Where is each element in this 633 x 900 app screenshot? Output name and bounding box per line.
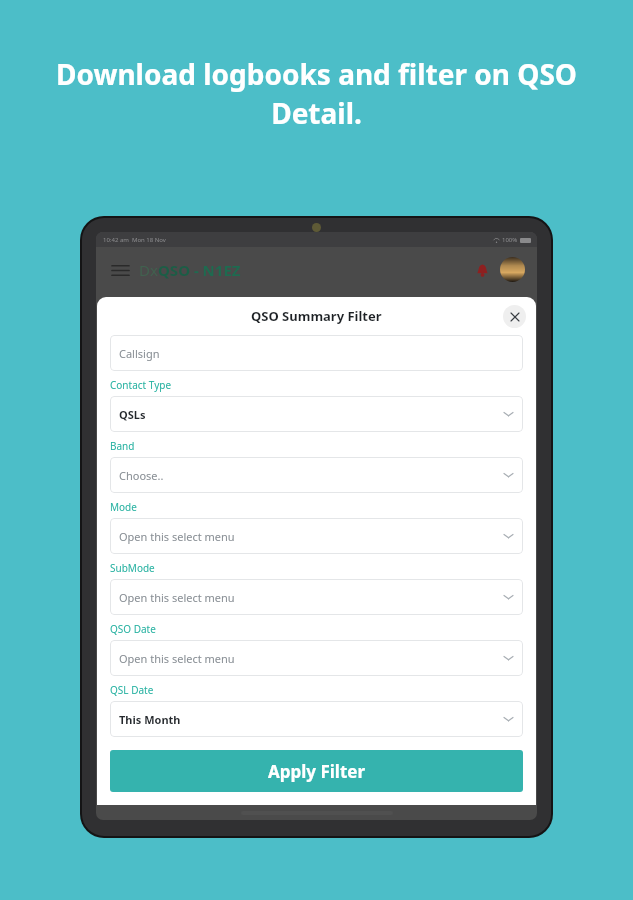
staticText: This Month xyxy=(119,712,181,727)
staticText: Open this select menu xyxy=(119,590,235,605)
button[interactable]: QSLs xyxy=(110,396,523,432)
button[interactable]: Callsign xyxy=(110,335,523,371)
staticText: Choose.. xyxy=(119,468,164,483)
button[interactable]: Profile xyxy=(500,257,525,282)
button[interactable]: Notifications xyxy=(471,259,493,281)
staticText: Band xyxy=(110,439,135,453)
staticText: QSL Date xyxy=(110,683,154,697)
staticText: 10:42 am Mon 18 Nov xyxy=(103,236,166,244)
staticText: Contact Type xyxy=(110,378,172,392)
staticText: Open this select menu xyxy=(119,651,235,666)
button[interactable]: Open this select menu xyxy=(110,640,523,676)
button[interactable]: Open this select menu xyxy=(110,579,523,615)
staticText: QSO xyxy=(158,260,190,280)
button[interactable]: Close xyxy=(503,305,526,328)
button[interactable]: Apply Filter xyxy=(110,750,523,792)
staticText: QSO Summary Filter xyxy=(251,307,382,325)
staticText: Download logbooks and filter on QSO Deta… xyxy=(42,55,591,132)
button[interactable]: Choose.. xyxy=(110,457,523,493)
button[interactable]: This Month xyxy=(110,701,523,737)
staticText: QSO Date xyxy=(110,622,156,636)
staticText: - N1EZ xyxy=(190,260,241,280)
staticText: Open this select menu xyxy=(119,529,235,544)
staticText: Apply Filter xyxy=(268,760,366,783)
button[interactable]: Open this select menu xyxy=(110,518,523,554)
staticText: Dx xyxy=(139,260,158,280)
staticText: 100% xyxy=(502,236,518,244)
button[interactable]: Menu xyxy=(108,258,132,282)
staticText: Callsign xyxy=(119,346,160,361)
staticText: Mode xyxy=(110,500,137,514)
staticText: QSLs xyxy=(119,407,146,422)
staticText: SubMode xyxy=(110,561,155,575)
